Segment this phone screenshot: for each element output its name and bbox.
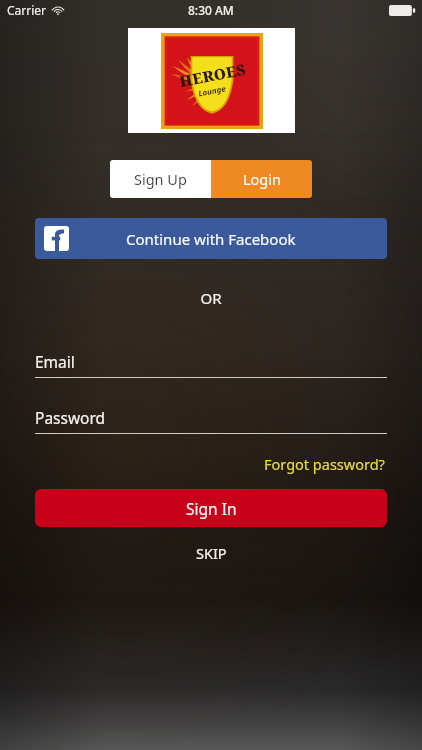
- button[interactable]: Password: [35, 407, 387, 434]
- staticText: Sign Up: [134, 169, 187, 189]
- staticText: HEROES: [178, 59, 247, 91]
- button[interactable]: Forgot password?: [262, 451, 387, 477]
- staticText: Continue with Facebook: [126, 229, 296, 249]
- staticText: 8:30 AM: [188, 2, 234, 18]
- staticText: Carrier: [7, 2, 47, 18]
- button[interactable]: Login: [211, 160, 312, 198]
- staticText: OR: [0, 288, 422, 308]
- button[interactable]: Sign Up: [110, 160, 211, 198]
- staticText: Lounge: [197, 82, 227, 98]
- button[interactable]: SKIP: [180, 539, 243, 567]
- staticText: Forgot password?: [264, 454, 385, 474]
- staticText: Password: [35, 407, 106, 428]
- button[interactable]: Continue with Facebook: [35, 218, 387, 259]
- button[interactable]: Email: [35, 351, 387, 378]
- staticText: Email: [35, 351, 75, 372]
- staticText: Login: [243, 169, 281, 189]
- staticText: SKIP: [196, 543, 227, 563]
- button[interactable]: Sign In: [35, 489, 387, 527]
- staticText: Sign In: [186, 498, 237, 519]
